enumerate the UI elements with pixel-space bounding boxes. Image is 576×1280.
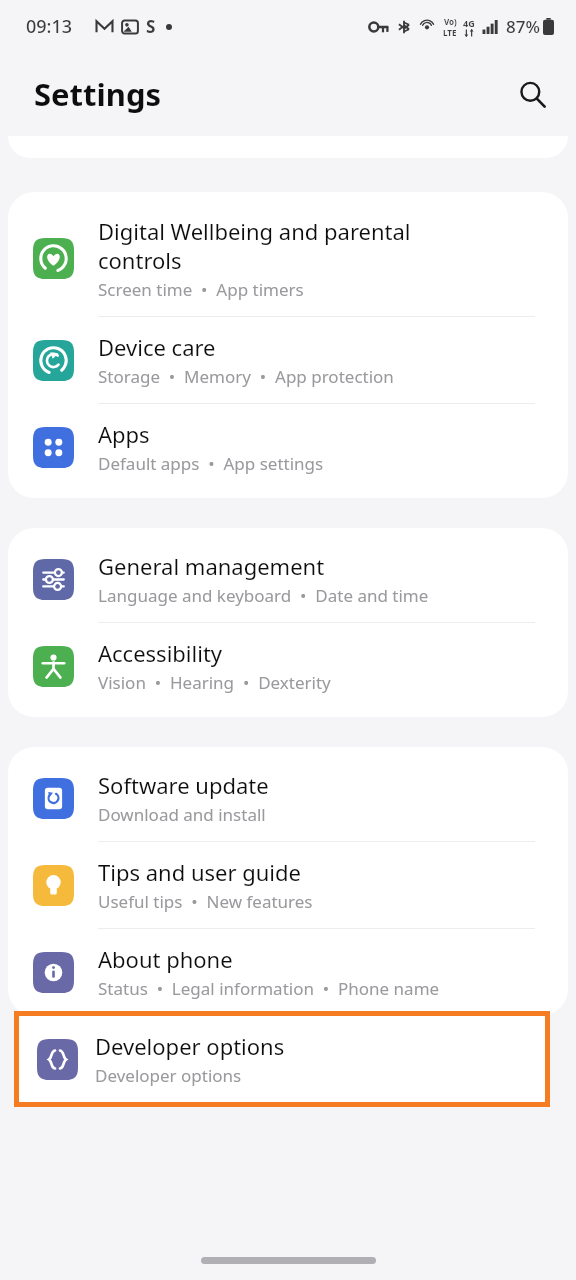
staticText: LTE [443,27,457,38]
staticText: Screen time • App timers [98,278,304,301]
staticText: Developer options [95,1064,242,1087]
staticText: Default apps • App settings [98,452,324,475]
button[interactable]: Software update [8,755,568,841]
staticText: Software update [98,770,269,800]
staticText: Language and keyboard • Date and time [98,584,429,607]
staticText: Tips and user guide [98,857,301,887]
button[interactable]: Device care [8,317,568,403]
staticText: 4G [463,17,475,29]
button[interactable]: Developer options [19,1016,545,1102]
staticText: 87% [506,15,540,38]
staticText: Useful tips • New features [98,890,313,913]
button[interactable]: Tips and user guide [8,842,568,928]
staticText: About phone [98,944,233,974]
button[interactable]: General management [8,536,568,622]
staticText: 09:13 [26,14,73,39]
staticText: Vision • Hearing • Dexterity [98,671,331,694]
staticText: S [146,15,156,38]
staticText: Settings [34,73,162,115]
staticText: Download and install [98,803,266,826]
staticText: Vo) [444,16,457,27]
button[interactable]: Apps [8,404,568,490]
button[interactable]: Accessibility [8,623,568,709]
button[interactable]: Search [508,70,556,118]
staticText: Apps [98,419,150,449]
staticText: Storage • Memory • App protection [98,365,394,388]
staticText: Developer options [95,1031,285,1061]
staticText: Accessibility [98,638,223,668]
staticText: Device care [98,332,216,362]
button[interactable]: About phone [8,929,568,1015]
button[interactable]: Digital Wellbeing and parental controls [8,200,568,316]
staticText: General management [98,551,325,581]
staticText: Digital Wellbeing and parental controls [98,216,411,275]
staticText: Status • Legal information • Phone name [98,977,440,1000]
